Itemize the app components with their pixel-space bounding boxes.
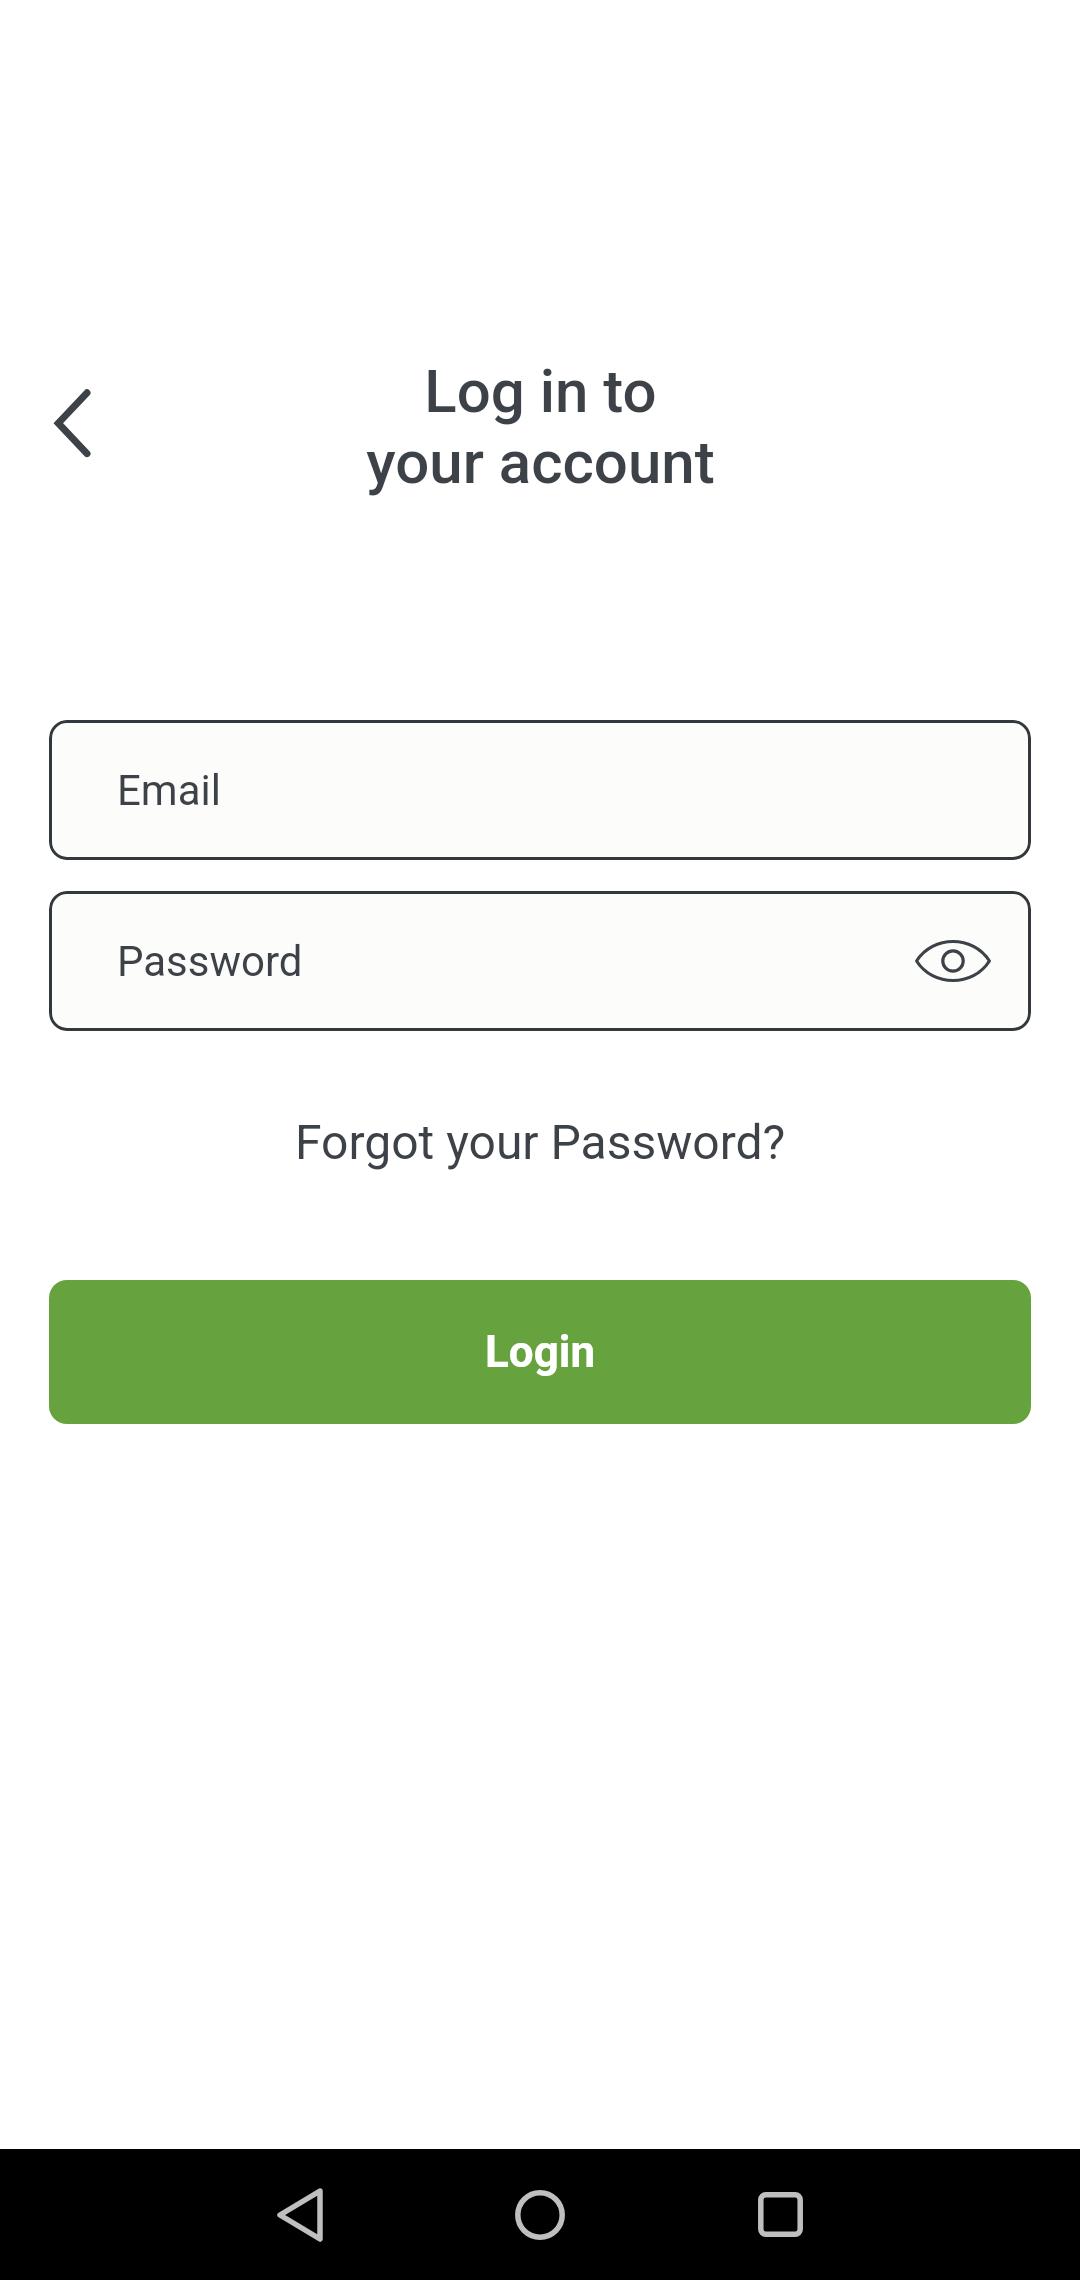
staticText: Login [485,1326,596,1378]
staticText: Log in to your account [366,356,715,498]
button[interactable]: Home [480,2149,600,2280]
button[interactable]: Email [49,720,1031,860]
staticText: Forgot your Password? [295,1114,786,1170]
button[interactable]: Forgot your Password? [275,1104,806,1180]
button[interactable]: Back [12,369,122,479]
button[interactable]: Back [240,2149,360,2280]
staticText: Password [117,937,303,986]
button[interactable]: Login [49,1280,1031,1424]
staticText: Email [117,766,221,815]
button[interactable]: Show password [898,906,1008,1016]
button[interactable]: Recent apps [720,2149,840,2280]
button[interactable]: Password [49,891,1031,1031]
